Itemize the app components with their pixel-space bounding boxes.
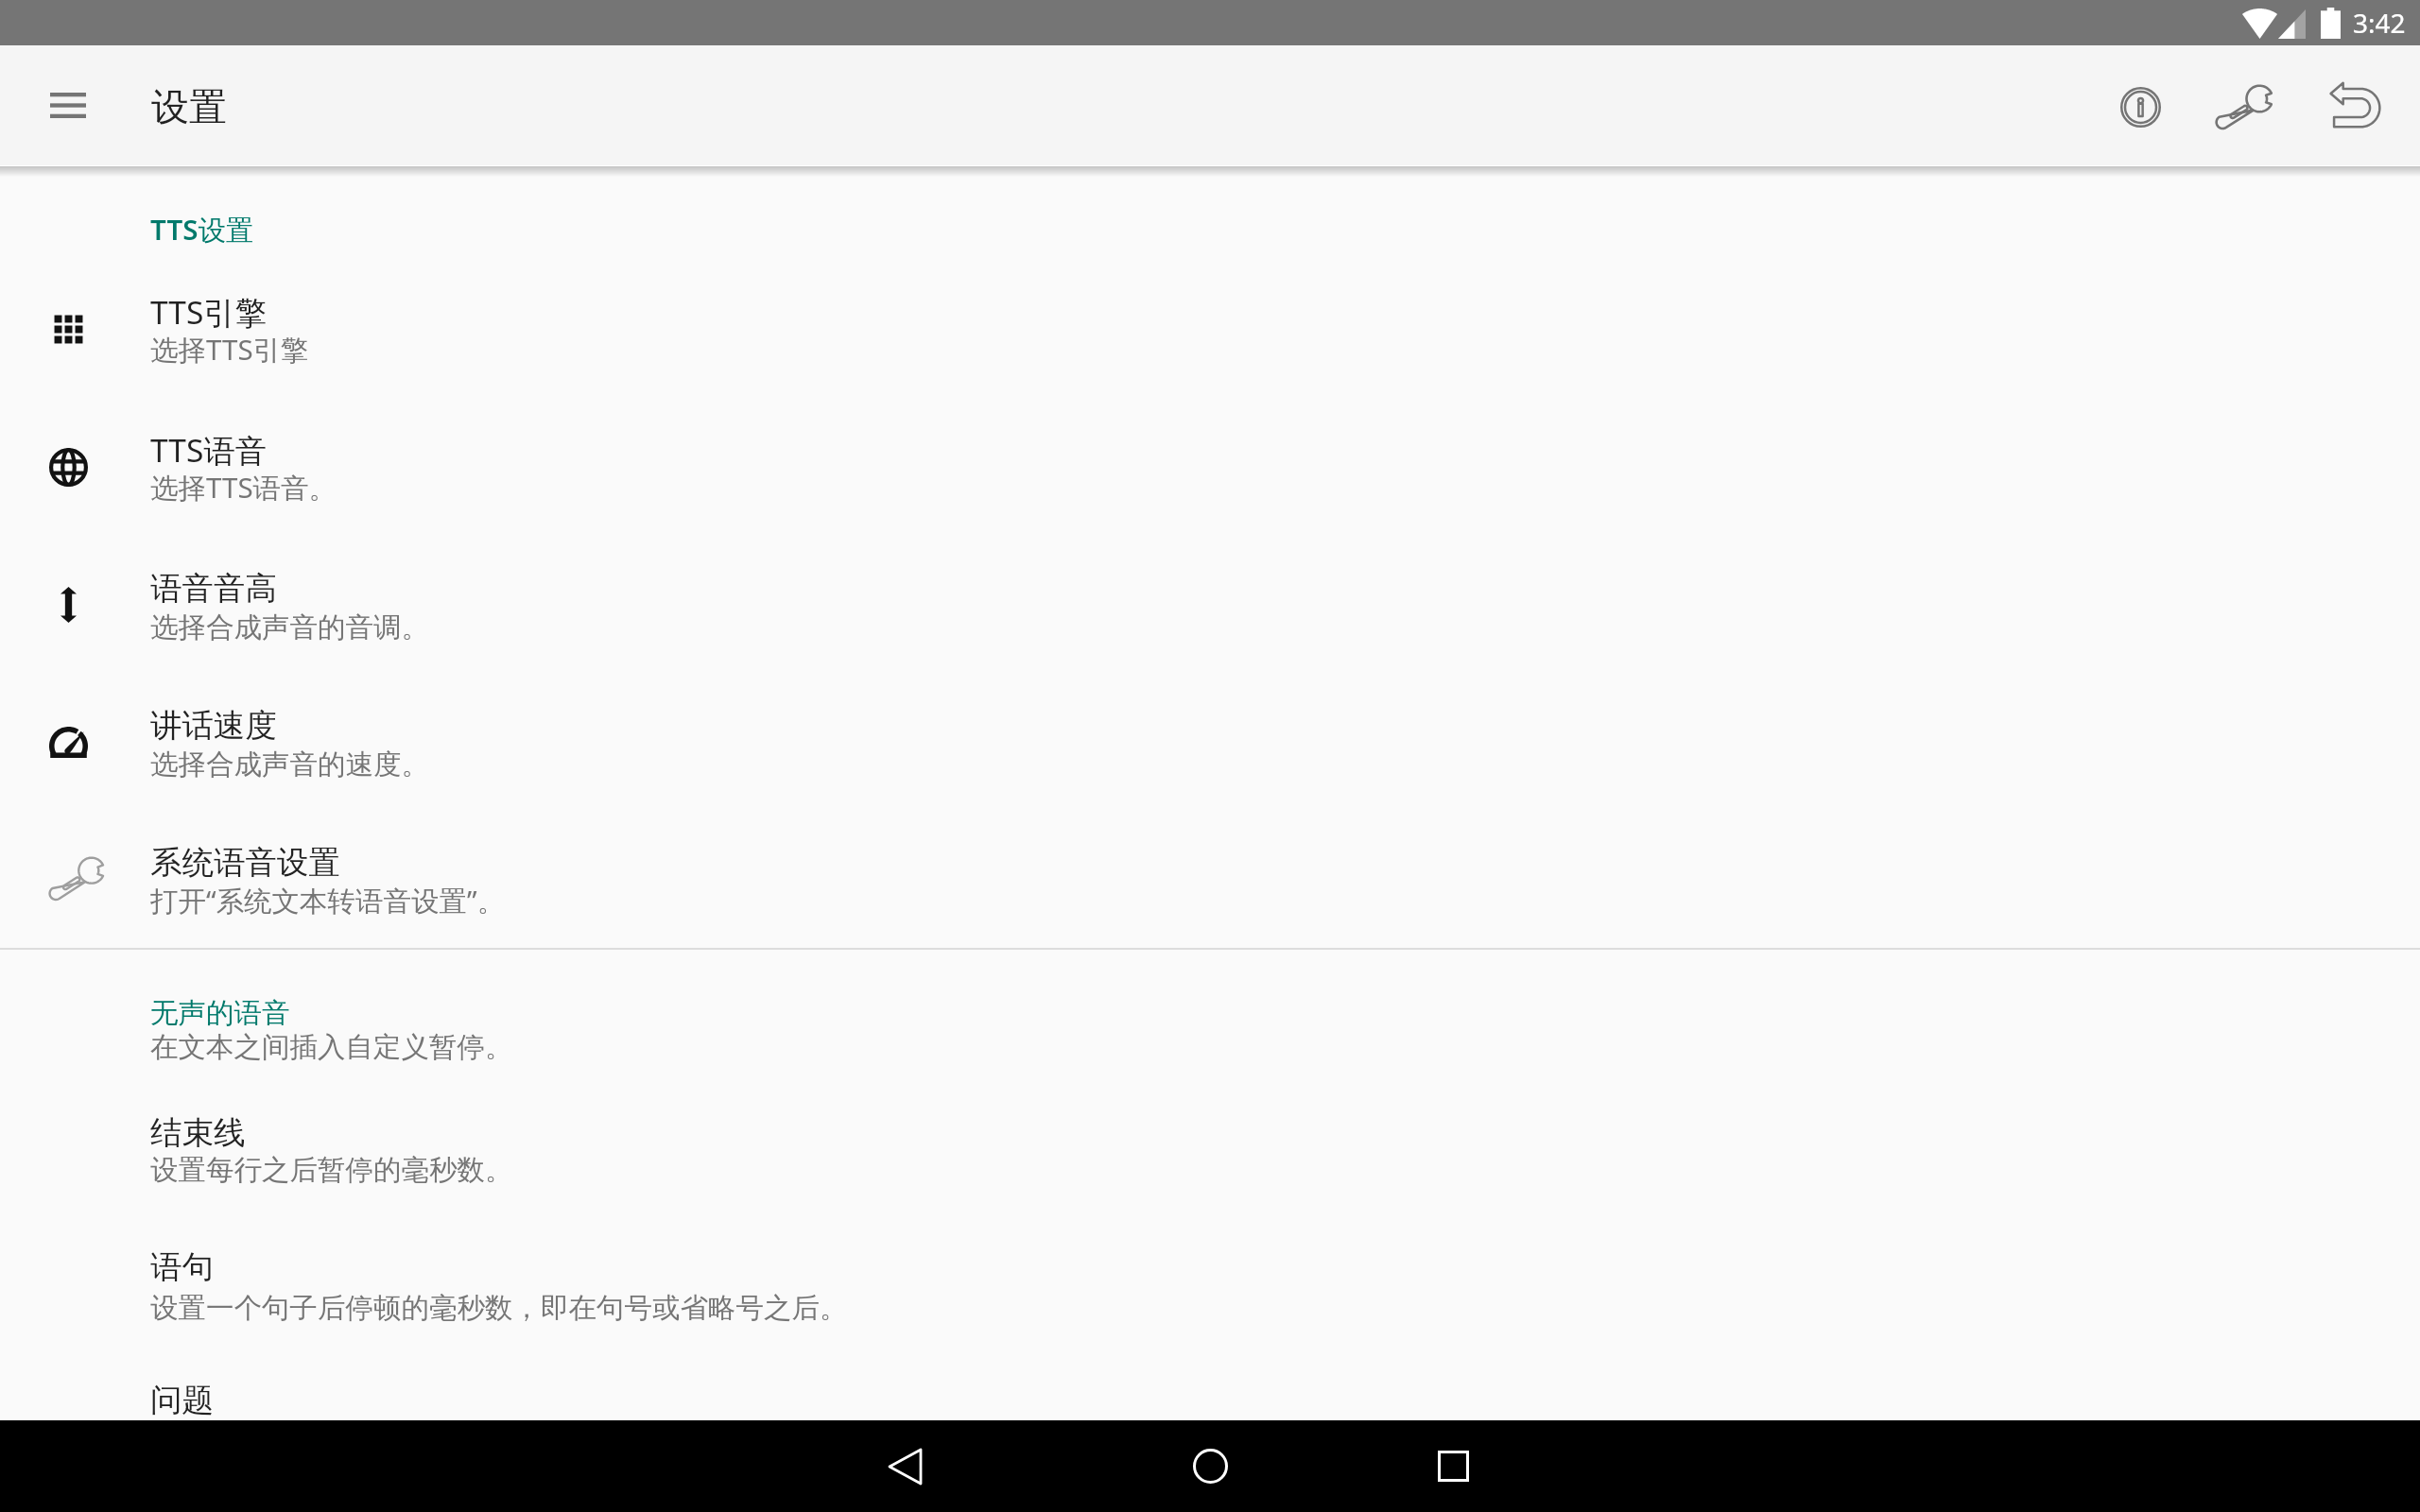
button[interactable]: Recents xyxy=(1396,1420,1510,1512)
staticText: 系统语音设置 xyxy=(150,843,340,883)
staticText: 设置一个句子后停顿的毫秒数，即在句号或省略号之后。 xyxy=(150,1291,848,1326)
button[interactable]: 讲话速度 xyxy=(0,706,2420,817)
button[interactable]: Settings xyxy=(2202,63,2289,150)
staticText: 选择TTS引擎 xyxy=(150,330,309,368)
staticText: 在文本之间插入自定义暂停。 xyxy=(150,1030,513,1065)
staticText: 设置每行之后暂停的毫秒数。 xyxy=(150,1153,513,1188)
button[interactable]: 语音音高 xyxy=(0,569,2420,680)
button[interactable]: Undo xyxy=(2309,63,2396,150)
staticText: 选择TTS语音。 xyxy=(150,468,337,506)
button[interactable]: TTS引擎 xyxy=(0,290,2420,402)
staticText: 选择合成声音的音调。 xyxy=(150,610,429,645)
staticText: 3:42 xyxy=(2353,5,2406,41)
staticText: 选择合成声音的速度。 xyxy=(150,747,429,782)
button[interactable]: 结束线 xyxy=(0,1113,2420,1203)
button[interactable]: TTS语音 xyxy=(0,428,2420,540)
staticText: TTS语音 xyxy=(150,428,268,472)
staticText: 语音音高 xyxy=(150,569,277,609)
staticText: 语句 xyxy=(150,1247,214,1287)
button[interactable]: Menu xyxy=(34,71,102,139)
button[interactable]: 系统语音设置 xyxy=(0,843,2420,954)
button[interactable]: Home xyxy=(1153,1420,1267,1512)
button[interactable]: 无声的语音 xyxy=(0,996,2420,1083)
button[interactable]: TTS设置 xyxy=(0,210,2420,257)
staticText: 问题 xyxy=(150,1381,214,1420)
staticText: 打开“系统文本转语音设置”。 xyxy=(150,881,506,919)
button[interactable]: 语句 xyxy=(0,1247,2420,1337)
staticText: 设置 xyxy=(151,83,227,130)
staticText: TTS引擎 xyxy=(150,290,268,334)
button[interactable]: 问题 xyxy=(0,1381,2420,1420)
staticText: 讲话速度 xyxy=(150,706,277,746)
staticText: 结束线 xyxy=(150,1113,246,1153)
staticText: TTS设置 xyxy=(150,210,254,248)
staticText: 无声的语音 xyxy=(150,996,290,1031)
button[interactable]: Info xyxy=(2097,63,2184,150)
button[interactable]: Back xyxy=(848,1420,961,1512)
